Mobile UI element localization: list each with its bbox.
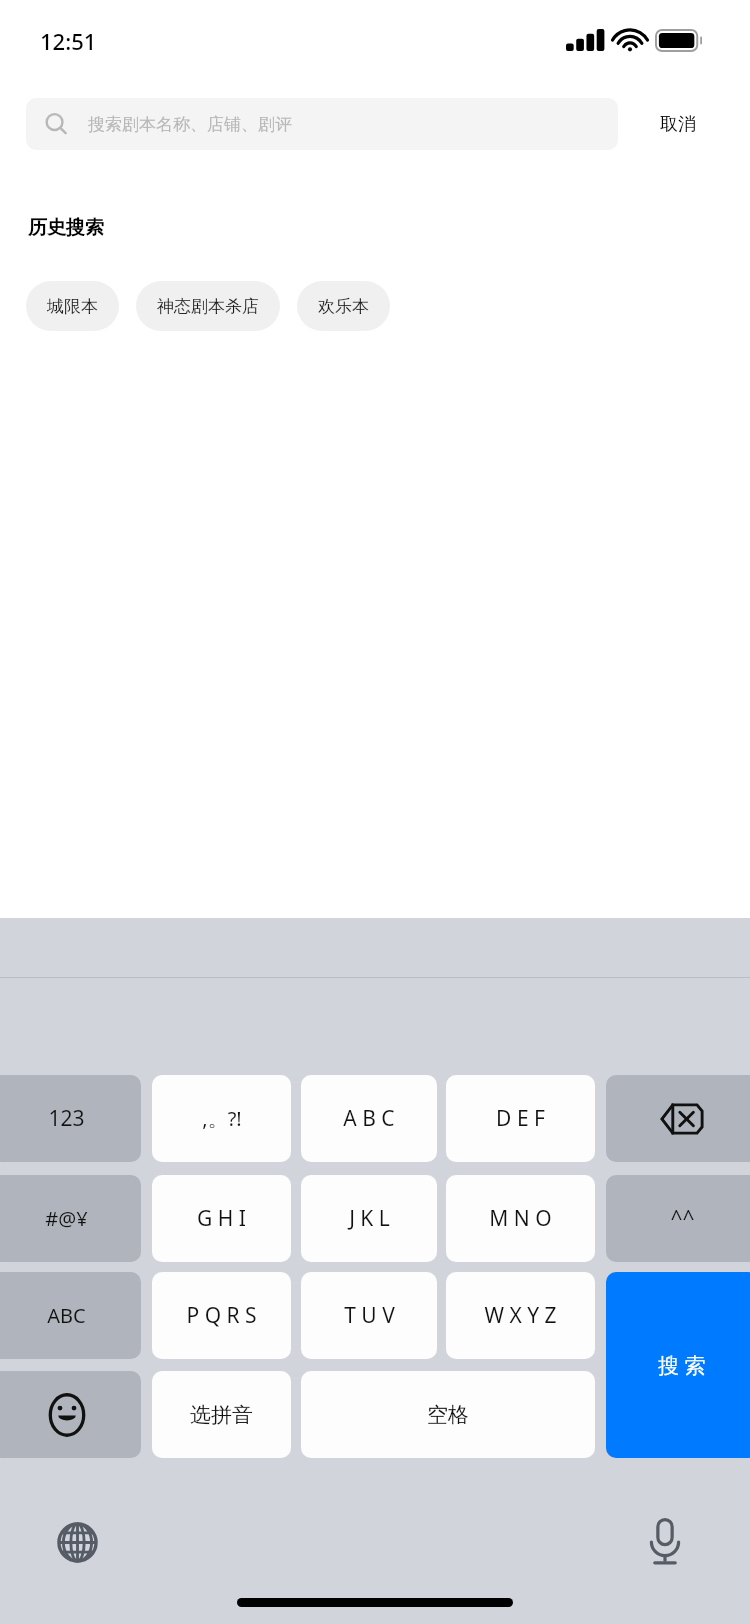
- button[interactable]: G H I: [152, 1175, 291, 1262]
- button[interactable]: 搜索剧本名称、店铺、剧评: [26, 98, 618, 150]
- staticText: 神态剧本杀店: [157, 296, 259, 317]
- staticText: 搜索剧本名称、店铺、剧评: [88, 114, 292, 135]
- button[interactable]: Voice input: [633, 1510, 697, 1574]
- button[interactable]: 空格: [301, 1371, 595, 1458]
- button[interactable]: 取消: [630, 98, 726, 150]
- staticText: T U V: [344, 1301, 395, 1330]
- button[interactable]: 选拼音: [152, 1371, 291, 1458]
- button[interactable]: 城限本: [26, 281, 119, 331]
- button[interactable]: A B C: [301, 1075, 437, 1162]
- button[interactable]: Change keyboard language: [45, 1510, 109, 1574]
- staticText: 欢乐本: [318, 296, 369, 317]
- staticText: D E F: [496, 1104, 545, 1133]
- staticText: #@¥: [45, 1205, 88, 1232]
- staticText: 123: [48, 1104, 85, 1133]
- staticText: J K L: [349, 1204, 390, 1233]
- button[interactable]: ABC: [0, 1272, 141, 1359]
- button[interactable]: T U V: [301, 1272, 437, 1359]
- staticText: 历史搜索: [28, 216, 104, 240]
- button[interactable]: W X Y Z: [446, 1272, 595, 1359]
- staticText: 搜 索: [658, 1351, 706, 1380]
- staticText: 取消: [660, 113, 696, 136]
- button[interactable]: #@¥: [0, 1175, 141, 1262]
- button[interactable]: ,。?!: [152, 1075, 291, 1162]
- button[interactable]: 搜 索: [606, 1272, 750, 1458]
- button[interactable]: 123: [0, 1075, 141, 1162]
- staticText: A B C: [343, 1104, 395, 1133]
- staticText: W X Y Z: [484, 1301, 557, 1330]
- button[interactable]: 神态剧本杀店: [136, 281, 280, 331]
- staticText: P Q R S: [186, 1301, 257, 1330]
- button[interactable]: M N O: [446, 1175, 595, 1262]
- staticText: 空格: [427, 1402, 469, 1428]
- button[interactable]: 欢乐本: [297, 281, 390, 331]
- button[interactable]: J K L: [301, 1175, 437, 1262]
- staticText: 选拼音: [190, 1402, 253, 1428]
- staticText: ^^: [670, 1204, 695, 1233]
- staticText: M N O: [489, 1204, 552, 1233]
- staticText: 城限本: [47, 296, 98, 317]
- button[interactable]: Delete: [606, 1075, 750, 1162]
- button[interactable]: P Q R S: [152, 1272, 291, 1359]
- staticText: G H I: [197, 1204, 246, 1233]
- button[interactable]: Emoji: [0, 1371, 141, 1458]
- staticText: 12:51: [40, 26, 97, 56]
- button[interactable]: ^^: [606, 1175, 750, 1262]
- staticText: ,。?!: [202, 1105, 242, 1132]
- staticText: ABC: [47, 1302, 86, 1329]
- button[interactable]: D E F: [446, 1075, 595, 1162]
